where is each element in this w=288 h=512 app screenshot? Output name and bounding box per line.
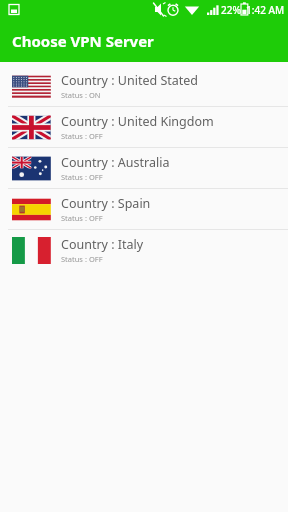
staticText: Choose VPN Server: [12, 31, 154, 51]
staticText: Country : United Stated: [61, 72, 199, 89]
button[interactable]: Country : Spain: [0, 189, 288, 229]
button[interactable]: Country : United Kingdom: [0, 107, 288, 147]
staticText: Status : OFF: [61, 131, 103, 141]
button[interactable]: Country : Italy: [0, 230, 288, 270]
button[interactable]: Country : Australia: [0, 148, 288, 188]
staticText: Country : Spain: [61, 195, 151, 212]
staticText: Country : United Kingdom: [61, 113, 214, 130]
staticText: Status : ON: [61, 90, 101, 100]
staticText: Status : OFF: [61, 213, 103, 223]
other: Status bar: [0, 0, 288, 20]
staticText: 1:42 AM: [246, 3, 285, 17]
staticText: 22%: [221, 3, 241, 17]
staticText: Status : OFF: [61, 254, 103, 264]
button[interactable]: Country : United Stated: [0, 66, 288, 106]
staticText: Country : Italy: [61, 236, 144, 253]
staticText: Status : OFF: [61, 172, 103, 182]
staticText: Country : Australia: [61, 154, 170, 171]
